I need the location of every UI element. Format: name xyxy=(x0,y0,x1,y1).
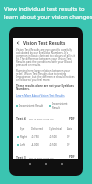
staticText: 0° xyxy=(67,135,70,139)
button[interactable]: Test 3 xyxy=(16,155,75,159)
staticText: -0.500 xyxy=(49,143,57,147)
staticText: Left xyxy=(20,143,26,147)
staticText: PDF xyxy=(69,155,75,159)
staticText: -4.000 xyxy=(31,143,39,147)
staticText: Cylindrical xyxy=(49,127,63,131)
staticText: Running here large relation between your… xyxy=(16,69,75,82)
staticText: PDF xyxy=(69,117,75,121)
button[interactable]: Back xyxy=(13,38,23,48)
staticText: Eye xyxy=(20,127,25,131)
staticText: Axis xyxy=(67,127,73,131)
button[interactable]: Learn More About Vision Test Results xyxy=(16,94,65,98)
staticText: Test 3 xyxy=(16,155,26,159)
staticText: -0.750 xyxy=(31,135,39,139)
staticText: Learn More About Vision Test Results xyxy=(16,94,65,98)
staticText: Oct 12 2023 10:30 AM xyxy=(29,117,54,120)
staticText: 0° xyxy=(67,143,70,147)
staticText: Inconsistent Result xyxy=(52,102,75,110)
staticText: -0.500 xyxy=(49,135,57,139)
staticText: Vision Test Results are eye-specific car… xyxy=(16,48,75,67)
staticText: Right xyxy=(20,135,27,139)
staticText: View individual test results to xyxy=(4,5,85,13)
staticText: Delivered xyxy=(31,127,43,131)
staticText: Inconsistent Result xyxy=(19,104,44,108)
staticText: Vision Test Results xyxy=(23,40,66,46)
staticText: Test 4 xyxy=(16,116,26,121)
staticText: learn about your vision changes xyxy=(4,13,92,21)
button[interactable]: Test 4 xyxy=(16,116,75,121)
staticText: Oct 12 2023 10:30 AM xyxy=(29,156,54,159)
staticText: These results alone are not your Eyeblue… xyxy=(16,84,75,91)
